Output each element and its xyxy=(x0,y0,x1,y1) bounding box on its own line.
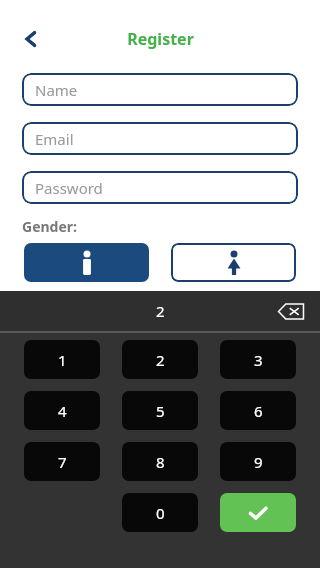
button[interactable]: Password xyxy=(22,171,298,204)
staticText: 0 xyxy=(156,503,165,523)
button[interactable]: 9 xyxy=(220,442,296,481)
staticText: 2 xyxy=(156,350,165,370)
button[interactable]: Back xyxy=(14,22,48,56)
staticText: 8 xyxy=(156,452,165,472)
button[interactable]: 1 xyxy=(24,340,100,379)
button[interactable]: Male xyxy=(24,243,149,282)
button[interactable]: 7 xyxy=(24,442,100,481)
staticText: Password xyxy=(35,178,103,198)
staticText: 5 xyxy=(156,401,165,421)
staticText: Name xyxy=(35,80,78,100)
button[interactable]: 4 xyxy=(24,391,100,430)
staticText: 2 xyxy=(156,301,165,321)
button[interactable]: Name xyxy=(22,73,298,106)
button[interactable]: Female xyxy=(171,243,296,282)
staticText: 9 xyxy=(254,452,263,472)
button[interactable]: Email xyxy=(22,122,298,155)
staticText: 4 xyxy=(58,401,67,421)
button[interactable]: 5 xyxy=(122,391,198,430)
staticText: Email xyxy=(35,129,74,149)
staticText: 3 xyxy=(254,350,263,370)
button[interactable]: 6 xyxy=(220,391,296,430)
staticText: Gender: xyxy=(22,217,77,236)
button[interactable]: Backspace xyxy=(274,298,308,324)
button[interactable]: 8 xyxy=(122,442,198,481)
staticText: 7 xyxy=(58,452,67,472)
button[interactable]: 2 xyxy=(122,340,198,379)
staticText: Register xyxy=(127,28,194,50)
staticText: 6 xyxy=(254,401,263,421)
button[interactable]: 3 xyxy=(220,340,296,379)
button[interactable]: 0 xyxy=(122,493,198,532)
button[interactable]: Confirm xyxy=(220,493,296,532)
staticText: 1 xyxy=(58,350,67,370)
